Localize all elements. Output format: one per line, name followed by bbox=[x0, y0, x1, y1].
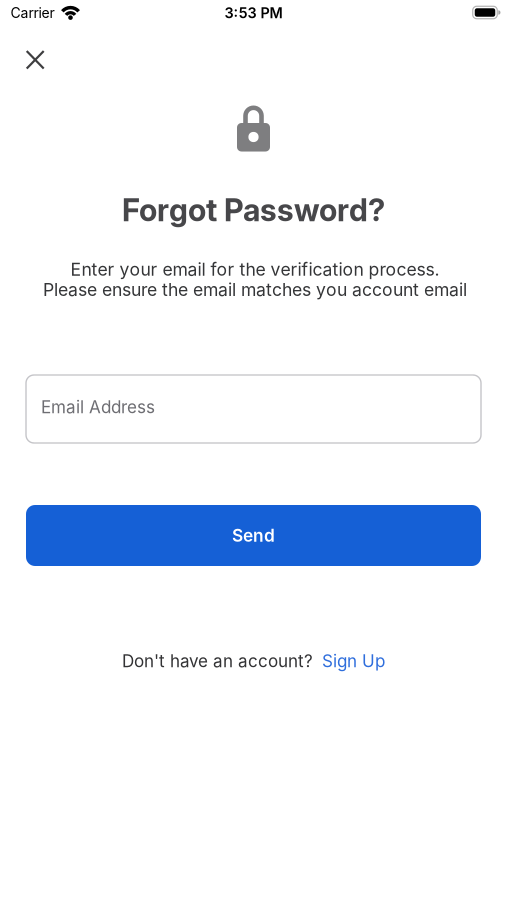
button[interactable]: Email Address bbox=[26, 375, 481, 443]
button[interactable]: Send bbox=[26, 505, 481, 566]
staticText: Send bbox=[232, 525, 275, 546]
staticText: Please ensure the email matches you acco… bbox=[43, 279, 467, 300]
staticText: Don't have an account? bbox=[122, 651, 313, 671]
staticText: Enter your email for the verification pr… bbox=[70, 259, 439, 280]
staticText: Forgot Password? bbox=[122, 191, 385, 228]
staticText: Email Address bbox=[41, 397, 155, 417]
button[interactable]: Close bbox=[17, 41, 53, 78]
staticText: Carrier bbox=[10, 4, 54, 21]
button[interactable]: Sign Up bbox=[322, 651, 385, 671]
staticText: Sign Up bbox=[322, 651, 385, 671]
staticText: 3:53 PM bbox=[224, 4, 282, 22]
